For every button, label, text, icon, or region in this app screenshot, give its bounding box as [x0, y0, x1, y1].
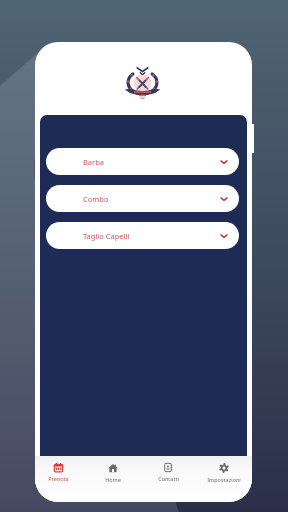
button[interactable]: Home — [86, 456, 140, 502]
button[interactable]: Impostazioni — [197, 456, 251, 502]
staticText: Taglio Capelli — [83, 231, 130, 241]
staticText: Combo — [83, 194, 109, 204]
button[interactable]: Barba — [46, 148, 239, 175]
staticText: Impostazioni — [207, 476, 241, 483]
staticText: Prenota — [48, 475, 69, 482]
staticText: Contatti — [158, 475, 179, 482]
button[interactable]: Combo — [46, 185, 239, 212]
button[interactable]: Taglio Capelli — [46, 222, 239, 249]
button[interactable]: Contatti — [141, 456, 195, 502]
staticText: Barba — [83, 157, 104, 167]
button[interactable]: Prenota — [35, 456, 85, 502]
staticText: Home — [105, 476, 121, 483]
